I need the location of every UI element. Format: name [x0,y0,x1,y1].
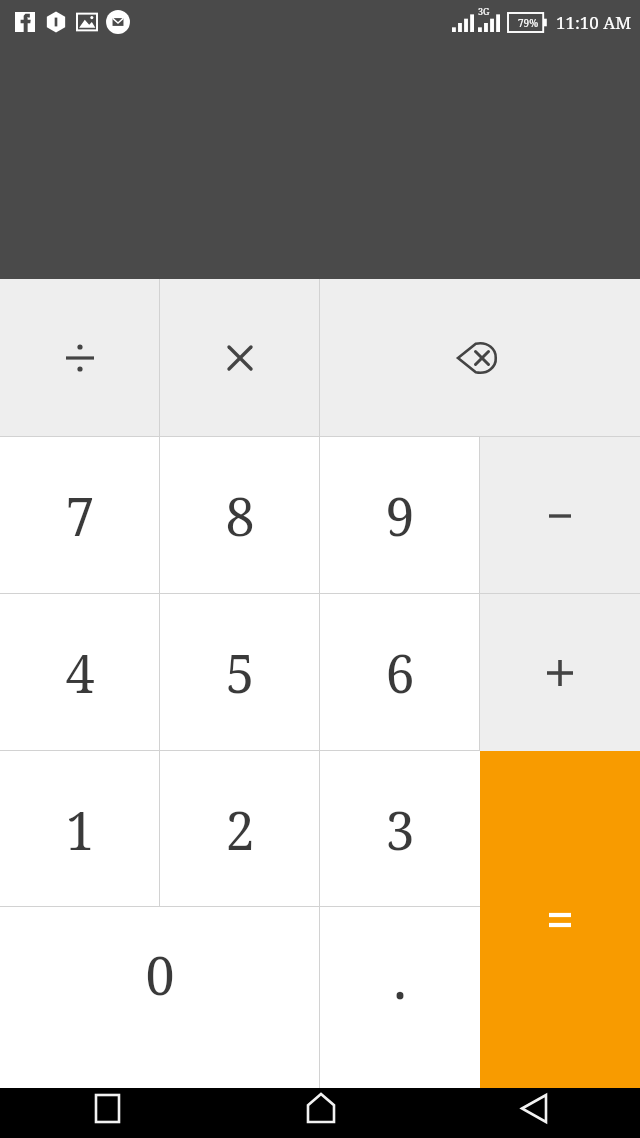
button[interactable]: 0 [0,907,320,1088]
button[interactable]: Home [214,1088,427,1138]
button[interactable] [0,279,160,437]
button[interactable] [480,437,640,594]
staticText: 79% [518,16,539,30]
staticText: 5 [225,637,255,708]
staticText: 11:10 AM [556,11,632,34]
staticText: 2 [225,794,255,865]
button[interactable]: Recents [0,1088,214,1138]
staticText: 4 [65,637,95,708]
staticText: 6 [385,637,415,708]
button[interactable]: 5 [160,594,320,751]
button[interactable] [480,594,640,751]
button[interactable]: 2 [160,751,320,907]
button[interactable]: 1 [0,751,160,907]
button[interactable]: Back [427,1088,640,1138]
button[interactable]: 7 [0,437,160,594]
staticText: 3 [385,794,415,865]
staticText: 3G [478,5,490,17]
button[interactable]: 9 [320,437,480,594]
staticText: 9 [385,480,415,551]
button[interactable] [160,279,320,437]
button[interactable]: . [320,907,480,1088]
staticText: 1 [65,794,95,865]
staticText: 0 [145,939,175,1010]
button[interactable]: 8 [160,437,320,594]
staticText: 8 [225,480,255,551]
button[interactable]: 3 [320,751,480,907]
button[interactable]: 6 [320,594,480,751]
button[interactable]: 4 [0,594,160,751]
button[interactable] [480,751,640,1088]
button[interactable]: Backspace [320,279,640,437]
staticText: 7 [65,480,95,551]
staticText: . [393,939,407,1015]
